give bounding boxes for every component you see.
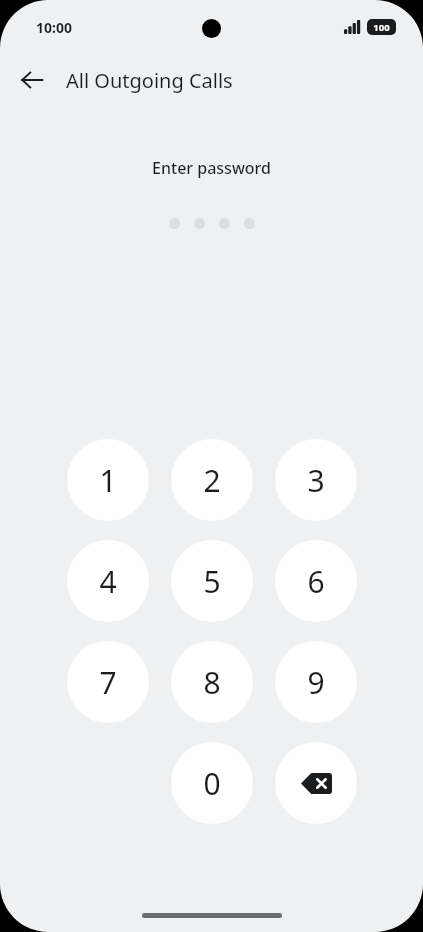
button[interactable]: 6	[275, 540, 357, 622]
staticText: 9	[307, 662, 325, 703]
button[interactable]: 4	[67, 540, 149, 622]
staticText: 10:00	[36, 18, 72, 37]
button[interactable]: 0	[171, 742, 253, 824]
button[interactable]: Backspace	[275, 742, 357, 824]
button[interactable]: 3	[275, 439, 357, 521]
button[interactable]: 8	[171, 641, 253, 723]
button[interactable]: 1	[67, 439, 149, 521]
button[interactable]: Back	[10, 58, 54, 102]
staticText: 7	[99, 662, 117, 703]
staticText: 5	[203, 561, 221, 602]
staticText: 1	[99, 460, 117, 501]
staticText: 6	[307, 561, 325, 602]
button[interactable]: 5	[171, 540, 253, 622]
staticText: 0	[203, 763, 221, 804]
button[interactable]: 9	[275, 641, 357, 723]
button[interactable]: 7	[67, 641, 149, 723]
staticText: All Outgoing Calls	[66, 67, 233, 94]
staticText: 2	[203, 460, 221, 501]
staticText: 100	[373, 21, 390, 34]
staticText: 8	[203, 662, 221, 703]
staticText: 3	[307, 460, 325, 501]
staticText: 4	[99, 561, 117, 602]
button[interactable]: 2	[171, 439, 253, 521]
staticText: Enter password	[152, 157, 271, 179]
